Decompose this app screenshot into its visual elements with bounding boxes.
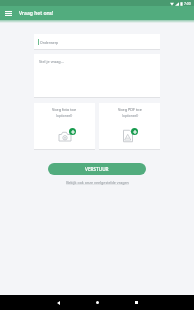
button[interactable]: Bekijk ook onze veelgestelde vragen [34,180,160,185]
button[interactable]: Home [78,295,117,310]
button[interactable]: Stel je vraag... [34,54,160,97]
staticText: Vraag het ons! [19,10,54,17]
staticText: Voeg PDF toe [118,107,142,112]
staticText: Stel je vraag... [39,59,64,64]
staticText: Voeg foto toe [52,107,77,112]
button[interactable]: Back [39,295,78,310]
button[interactable]: Menu [1,6,15,20]
staticText: (optioneel) [56,114,73,118]
button[interactable]: Onderwerp [34,34,160,49]
button[interactable]: Voeg foto toe [34,103,95,149]
button[interactable]: Recents [117,295,156,310]
staticText: Bekijk ook onze veelgestelde vragen [66,180,129,185]
button[interactable]: VERSTUUR [48,163,146,175]
staticText: VERSTUUR [85,166,109,172]
staticText: 7:00 [184,1,191,6]
staticText: (optioneel) [122,114,139,118]
staticText: Onderwerp [40,40,59,45]
button[interactable]: Voeg PDF toe [99,103,160,149]
